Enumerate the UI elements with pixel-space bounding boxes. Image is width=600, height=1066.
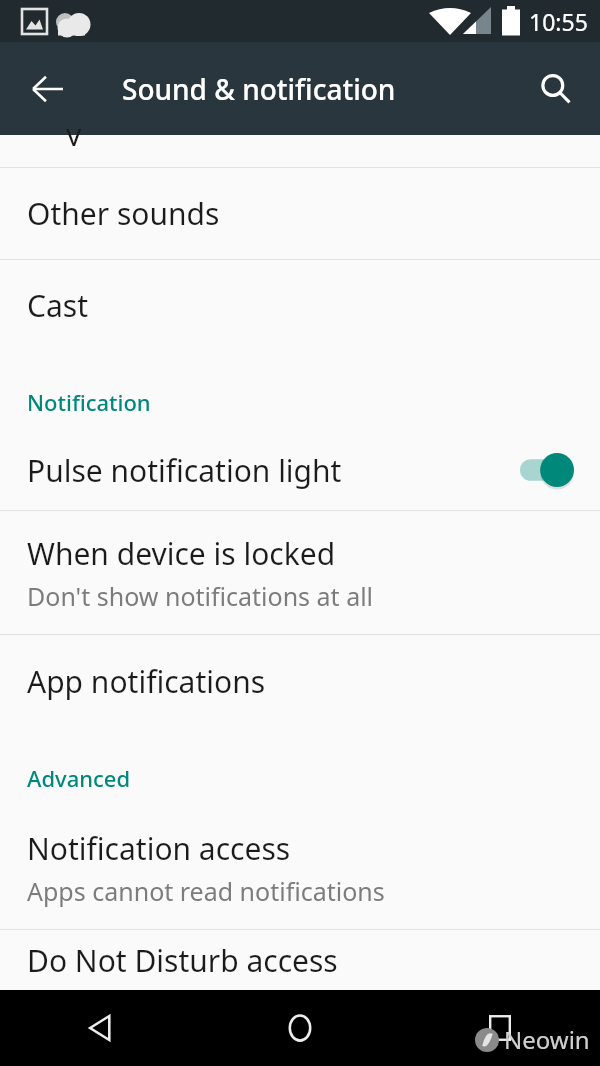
staticText: Do Not Disturb access — [27, 940, 338, 981]
staticText: Other sounds — [27, 193, 220, 234]
staticText: 10:55 — [529, 6, 588, 37]
button[interactable]: Recent apps — [400, 990, 600, 1066]
button[interactable]: Navigate up — [16, 57, 80, 121]
staticText: Notification access — [27, 828, 291, 869]
button[interactable]: Search — [524, 57, 588, 121]
staticText: Neowin — [504, 1023, 590, 1056]
button[interactable]: Other sounds — [0, 168, 600, 259]
button[interactable]: Home — [200, 990, 400, 1066]
staticText: When device is locked — [27, 533, 336, 574]
staticText: Apps cannot read notifications — [27, 874, 385, 908]
button[interactable]: App notifications — [0, 635, 600, 727]
staticText: Notification — [27, 387, 151, 417]
button[interactable]: When device is locked — [0, 511, 600, 634]
staticText: Advanced — [27, 763, 131, 793]
button[interactable]: Back — [0, 990, 200, 1066]
staticText: y — [66, 114, 82, 146]
button[interactable]: Pulse notification light — [0, 430, 600, 510]
button[interactable]: Cast — [0, 260, 600, 351]
staticText: Pulse notification light — [27, 450, 520, 491]
staticText: Don't show notifications at all — [27, 579, 374, 613]
button[interactable]: Notification access — [0, 806, 600, 929]
staticText: App notifications — [27, 661, 266, 702]
staticText: Sound & notification — [122, 70, 396, 108]
button[interactable]: Do Not Disturb access — [0, 930, 600, 990]
staticText: Cast — [27, 285, 88, 326]
